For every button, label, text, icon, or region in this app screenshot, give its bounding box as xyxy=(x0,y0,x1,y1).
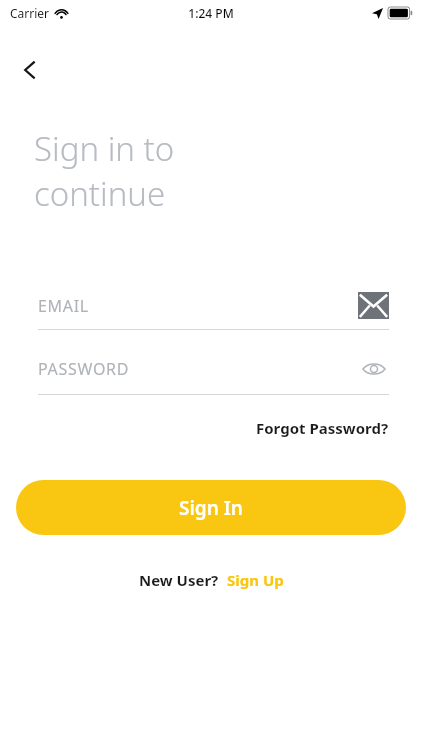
staticText: Sign Up xyxy=(227,570,284,590)
other: Email xyxy=(358,292,389,319)
staticText: New User? xyxy=(139,570,219,590)
staticText: Sign in to xyxy=(34,126,175,171)
staticText: Forgot Password? xyxy=(256,418,389,438)
staticText: Carrier xyxy=(10,5,50,21)
button[interactable]: Sign In xyxy=(16,480,406,535)
button[interactable]: Sign Up xyxy=(227,570,284,590)
button[interactable]: Show password xyxy=(359,354,389,384)
button[interactable]: Forgot Password? xyxy=(252,414,393,442)
staticText: continue xyxy=(34,171,166,216)
button[interactable]: PASSWORD xyxy=(38,354,389,395)
staticText: EMAIL xyxy=(38,295,358,317)
button[interactable]: EMAIL xyxy=(38,292,389,330)
staticText: 1:24 PM xyxy=(188,5,234,21)
button[interactable]: Back xyxy=(8,48,52,92)
staticText: PASSWORD xyxy=(38,358,359,380)
staticText: Sign In xyxy=(179,495,243,521)
